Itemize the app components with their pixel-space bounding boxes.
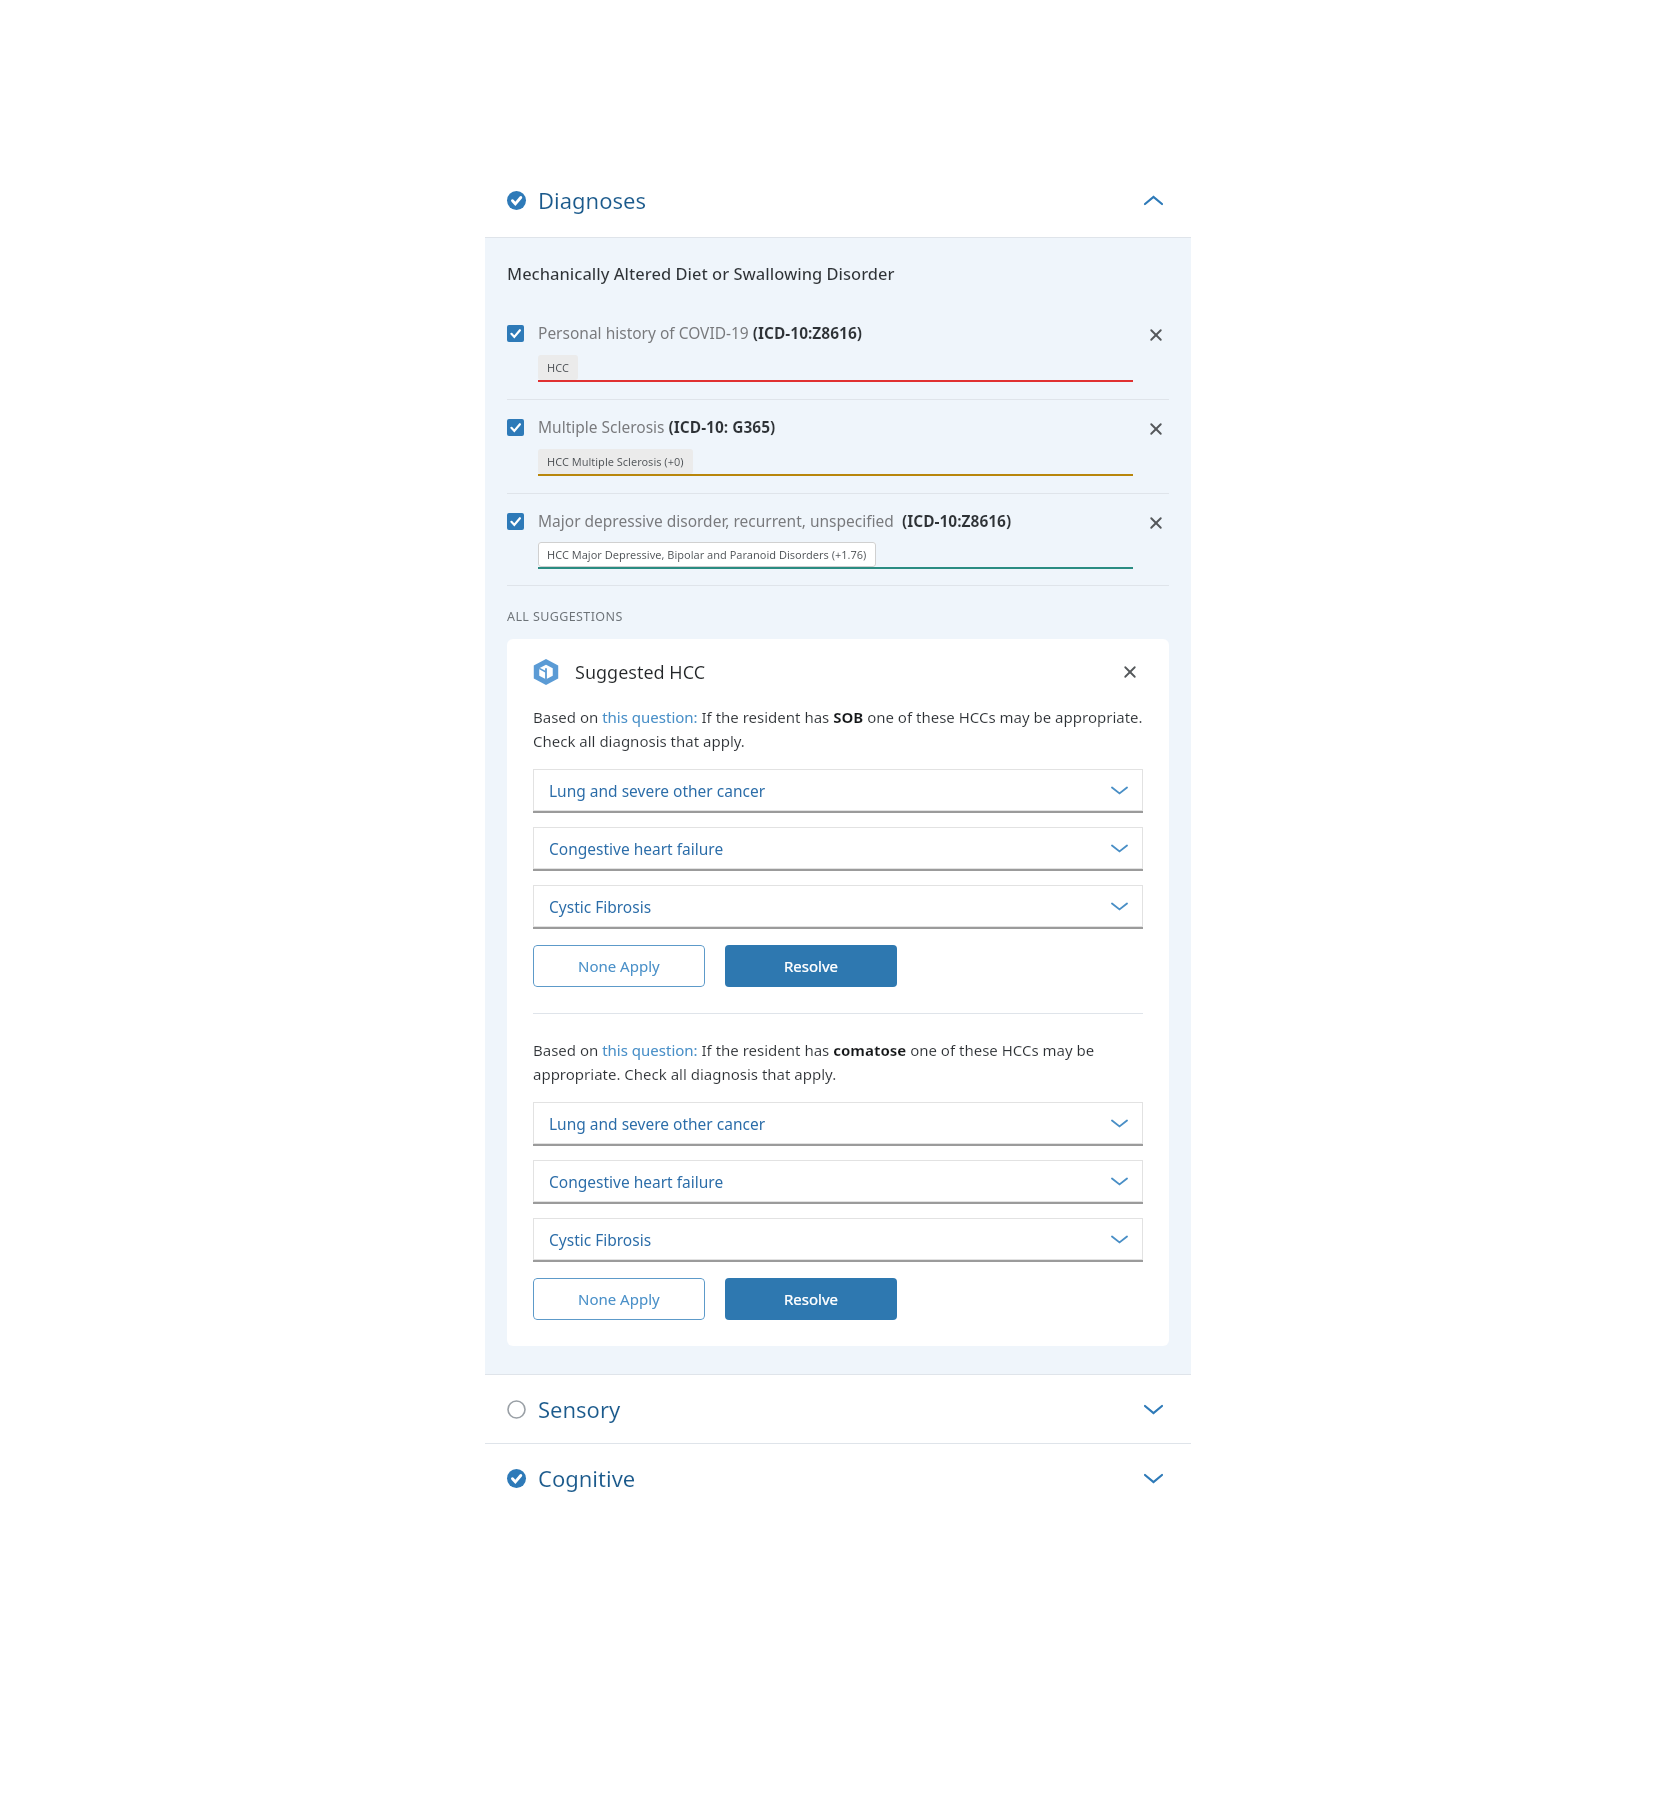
staticText: None Apply xyxy=(578,1289,660,1309)
button[interactable]: Cystic Fibrosis xyxy=(533,1218,1143,1262)
button[interactable]: Resolve xyxy=(725,1278,897,1320)
button[interactable]: Resolve xyxy=(725,945,897,987)
button[interactable]: HCC xyxy=(538,355,1133,382)
staticText: HCC xyxy=(547,360,569,375)
button[interactable]: HCC Multiple Sclerosis (+0) xyxy=(538,449,1133,476)
staticText: Resolve xyxy=(784,956,839,976)
staticText: Congestive heart failure xyxy=(549,838,724,859)
staticText: Diagnoses xyxy=(538,185,646,215)
staticText: Sensory xyxy=(538,1394,621,1424)
staticText: Congestive heart failure xyxy=(549,1171,724,1192)
button[interactable]: Multiple Sclerosis (ICD-10: G365) xyxy=(485,400,1191,493)
staticText: Mechanically Altered Diet or Swallowing … xyxy=(507,262,895,284)
button[interactable]: Collapse xyxy=(1137,184,1169,216)
button[interactable]: Major depressive disorder, recurrent, un… xyxy=(485,494,1191,585)
button[interactable]: Cognitive xyxy=(485,1444,1191,1512)
button[interactable]: Personal history of COVID-19 (ICD-10:Z86… xyxy=(485,306,1191,399)
staticText: Suggested HCC xyxy=(575,660,706,685)
staticText: Lung and severe other cancer xyxy=(549,1113,766,1134)
staticText: Cystic Fibrosis xyxy=(549,1229,652,1250)
button[interactable]: Cystic Fibrosis xyxy=(533,885,1143,929)
staticText: HCC Multiple Sclerosis (+0) xyxy=(547,454,684,469)
button[interactable]: Lung and severe other cancer xyxy=(533,769,1143,813)
staticText: Cognitive xyxy=(538,1463,636,1493)
staticText: Based on this question: If the resident … xyxy=(533,707,1143,751)
button[interactable]: Congestive heart failure xyxy=(533,827,1143,871)
staticText: Based on this question: If the resident … xyxy=(533,1040,1143,1084)
staticText: HCC Major Depressive, Bipolar and Parano… xyxy=(547,547,867,562)
staticText: Multiple Sclerosis (ICD-10: G365) xyxy=(538,416,776,437)
staticText: Major depressive disorder, recurrent, un… xyxy=(538,510,1012,531)
button[interactable]: Remove xyxy=(1143,322,1169,348)
button[interactable]: None Apply xyxy=(533,1278,705,1320)
staticText: Cystic Fibrosis xyxy=(549,896,652,917)
button[interactable]: Congestive heart failure xyxy=(533,1160,1143,1204)
button[interactable]: Remove xyxy=(1143,510,1169,536)
button[interactable]: Remove xyxy=(1143,416,1169,442)
staticText: Lung and severe other cancer xyxy=(549,780,766,801)
button[interactable]: Expand xyxy=(1137,1393,1169,1425)
button[interactable]: Expand xyxy=(1137,1462,1169,1494)
button[interactable]: Diagnoses xyxy=(485,163,1191,237)
button[interactable]: Sensory xyxy=(485,1375,1191,1443)
staticText: Personal history of COVID-19 (ICD-10:Z86… xyxy=(538,322,863,343)
button[interactable]: Lung and severe other cancer xyxy=(533,1102,1143,1146)
staticText: ALL SUGGESTIONS xyxy=(507,608,623,625)
button[interactable]: None Apply xyxy=(533,945,705,987)
button[interactable]: HCC Major Depressive, Bipolar and Parano… xyxy=(538,542,1133,569)
button[interactable]: Dismiss suggestion xyxy=(1117,659,1143,685)
staticText: None Apply xyxy=(578,956,660,976)
staticText: Resolve xyxy=(784,1289,839,1309)
